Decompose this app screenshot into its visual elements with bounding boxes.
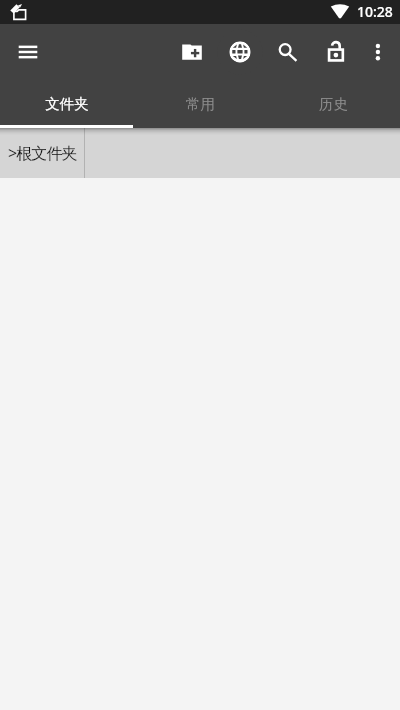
button[interactable]: 历史 xyxy=(267,80,400,128)
staticText: 常用 xyxy=(186,95,215,113)
staticText: 文件夹 xyxy=(45,95,89,113)
button[interactable]: >根文件夹 xyxy=(0,128,84,178)
button[interactable]: 文件夹 xyxy=(0,80,134,128)
button[interactable]: Language xyxy=(218,30,262,74)
staticText: 10:28 xyxy=(357,2,393,20)
button[interactable]: More options xyxy=(356,30,400,74)
button[interactable]: Lock xyxy=(314,30,358,74)
button[interactable]: Search xyxy=(265,30,309,74)
button[interactable]: 常用 xyxy=(134,80,267,128)
staticText: >根文件夹 xyxy=(8,142,77,164)
staticText: 历史 xyxy=(319,95,348,113)
button[interactable]: Navigation menu xyxy=(6,30,50,74)
button[interactable]: New folder xyxy=(170,30,214,74)
